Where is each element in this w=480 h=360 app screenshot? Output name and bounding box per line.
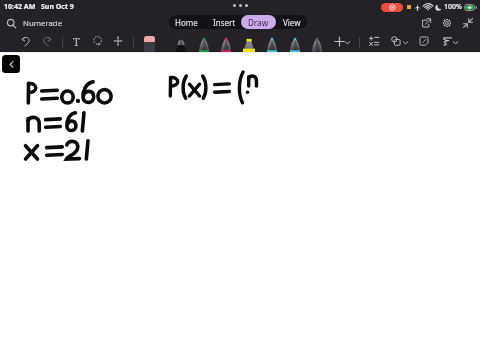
button[interactable]: Undo	[18, 33, 34, 49]
button[interactable]: Home	[169, 15, 205, 29]
other: Search	[6, 18, 17, 29]
staticText: 10:42 AM	[4, 2, 36, 12]
button[interactable]: Move	[110, 33, 126, 49]
button[interactable]: Eraser	[144, 36, 155, 52]
button[interactable]: Back	[2, 55, 20, 73]
button[interactable]: Settings	[440, 16, 454, 30]
button[interactable]: Text	[68, 33, 84, 49]
button[interactable]: Redo	[39, 33, 55, 49]
staticText: Home	[175, 17, 198, 28]
staticText: Draw	[248, 17, 269, 28]
staticText: Sun Oct 9	[41, 2, 74, 12]
button[interactable]: More options	[402, 39, 409, 46]
button[interactable]: Pen	[267, 37, 277, 52]
button[interactable]: Highlighter	[243, 38, 255, 52]
button[interactable]: More options	[344, 39, 351, 46]
button[interactable]: Pen	[176, 37, 186, 52]
staticText: Numerade	[23, 18, 63, 29]
button[interactable]: Search	[6, 18, 63, 29]
button[interactable]: Ink styles	[439, 33, 455, 49]
button[interactable]: Pen	[221, 37, 231, 52]
button[interactable]: More options	[452, 39, 459, 46]
button[interactable]: View	[276, 15, 307, 29]
staticText: T	[73, 34, 80, 49]
button[interactable]: Collapse	[461, 16, 475, 30]
staticText: 100%	[444, 2, 462, 12]
button[interactable]: Math	[366, 33, 382, 49]
button[interactable]: Pen	[290, 37, 300, 52]
button[interactable]: Draw	[241, 15, 276, 29]
button[interactable]: Insert	[206, 15, 243, 29]
button[interactable]: Sticky note	[416, 33, 432, 49]
button[interactable]: Pen	[199, 37, 209, 52]
button[interactable]: Add pen	[331, 33, 347, 49]
staticText: View	[283, 17, 301, 28]
button[interactable]: Pen	[312, 37, 322, 52]
staticText: Insert	[213, 17, 236, 28]
button[interactable]: Lasso	[90, 33, 106, 49]
button[interactable]: Share	[419, 16, 433, 30]
button[interactable]: Shapes	[388, 33, 404, 49]
